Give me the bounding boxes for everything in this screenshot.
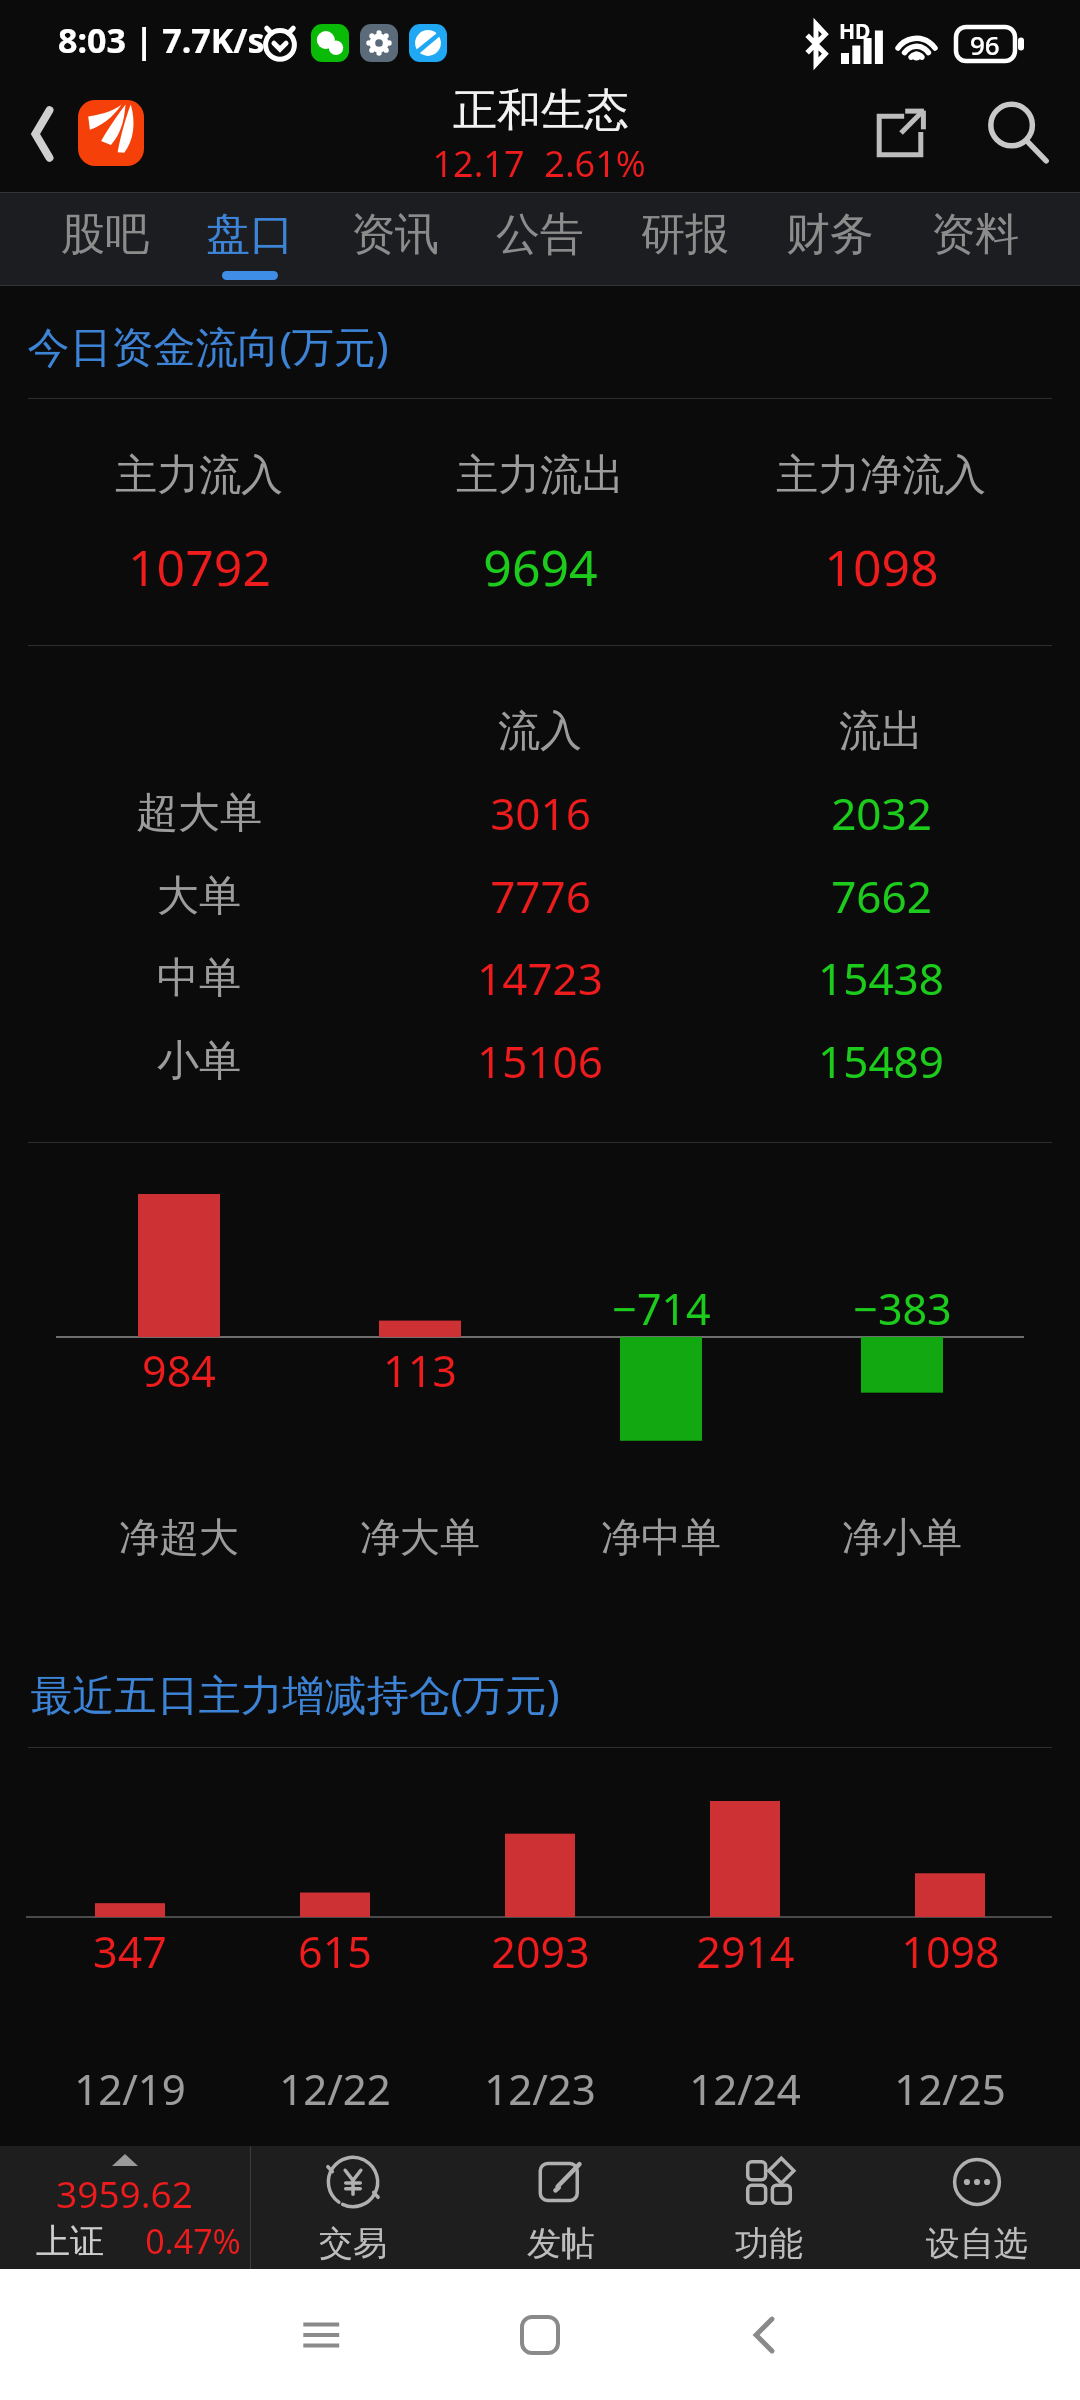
button[interactable]: 研报 xyxy=(612,192,757,286)
staticText: −383 xyxy=(853,1279,952,1338)
staticText: 主力流入 xyxy=(115,449,283,502)
staticText: 12/24 xyxy=(689,2060,801,2117)
button[interactable]: 资料 xyxy=(902,192,1047,286)
button[interactable] xyxy=(0,772,1080,854)
button[interactable]: 资讯 xyxy=(322,192,467,286)
button[interactable]: 公告 xyxy=(467,192,612,286)
staticText: 15106 xyxy=(477,1031,603,1091)
staticText: 0.47% xyxy=(145,2218,241,2264)
staticText: HD xyxy=(839,17,871,46)
staticText: 12/19 xyxy=(74,2060,186,2117)
button[interactable]: 财务 xyxy=(757,192,902,286)
staticText: 资料 xyxy=(931,207,1019,262)
staticText: 9694 xyxy=(483,533,598,601)
staticText: −714 xyxy=(612,1279,711,1338)
staticText: 最近五日主力增减持仓(万元) xyxy=(30,1665,560,1722)
staticText: 净中单 xyxy=(601,1512,721,1562)
staticText: 主力净流入 xyxy=(776,449,986,502)
staticText: 8:03 | 7.7K/s xyxy=(58,17,265,63)
staticText: 研报 xyxy=(641,207,729,262)
staticText: 3959.62 xyxy=(56,2168,193,2218)
staticText: 12/25 xyxy=(894,2060,1006,2117)
staticText: 2.61% xyxy=(544,139,646,188)
button[interactable] xyxy=(0,937,1080,1019)
staticText: 公告 xyxy=(496,207,584,262)
staticText: 96 xyxy=(970,27,1000,62)
staticText: 财务 xyxy=(786,207,874,262)
staticText: 15438 xyxy=(818,948,944,1008)
button[interactable] xyxy=(0,1020,1080,1102)
staticText: 资讯 xyxy=(351,207,439,262)
staticText: 12.17 xyxy=(432,139,525,188)
staticText: 中单 xyxy=(157,952,241,1005)
staticText: 正和生态 xyxy=(453,83,629,138)
button[interactable]: Back xyxy=(8,96,84,172)
button[interactable] xyxy=(0,300,1080,390)
button[interactable]: Back xyxy=(648,2269,864,2400)
button[interactable]: Recents xyxy=(216,2269,432,2400)
button[interactable]: 发帖 xyxy=(458,2146,664,2269)
button[interactable]: 设自选 xyxy=(874,2146,1080,2269)
staticText: 7776 xyxy=(490,866,591,926)
staticText: 大单 xyxy=(157,870,241,923)
staticText: 今日资金流向(万元) xyxy=(27,317,389,374)
staticText: 净大单 xyxy=(360,1512,480,1562)
staticText: 347 xyxy=(93,1922,167,1981)
staticText: 2914 xyxy=(696,1922,795,1981)
staticText: 14723 xyxy=(477,948,603,1008)
staticText: 113 xyxy=(383,1341,457,1400)
staticText: 1098 xyxy=(824,533,939,601)
button[interactable]: Share xyxy=(860,94,940,174)
staticText: 流入 xyxy=(498,705,582,758)
staticText: 主力流出 xyxy=(456,449,624,502)
button[interactable]: Eastmoney xyxy=(78,100,144,166)
staticText: 盘口 xyxy=(206,207,294,262)
button[interactable]: 盘口 xyxy=(177,192,322,286)
staticText: 2093 xyxy=(491,1922,590,1981)
staticText: 小单 xyxy=(157,1035,241,1088)
button[interactable]: Search xyxy=(978,94,1058,174)
button[interactable]: Home xyxy=(432,2269,648,2400)
staticText: 7662 xyxy=(831,866,932,926)
button[interactable] xyxy=(28,412,369,622)
staticText: 615 xyxy=(298,1922,372,1981)
button[interactable] xyxy=(0,855,1080,937)
button[interactable]: 功能 xyxy=(666,2146,872,2269)
button[interactable] xyxy=(710,412,1051,622)
staticText: 15489 xyxy=(818,1031,944,1091)
button[interactable]: 3959.62 xyxy=(0,2146,250,2269)
button[interactable]: 股吧 xyxy=(33,192,177,286)
staticText: 发帖 xyxy=(527,2222,595,2265)
staticText: 12/23 xyxy=(484,2060,596,2117)
staticText: 超大单 xyxy=(136,787,262,840)
button[interactable] xyxy=(0,1650,1080,1738)
staticText: 12/22 xyxy=(279,2060,391,2117)
staticText: 净超大 xyxy=(119,1512,239,1562)
staticText: 上证 xyxy=(36,2220,104,2263)
staticText: 2032 xyxy=(831,783,932,843)
staticText: 984 xyxy=(142,1341,216,1400)
staticText: 流出 xyxy=(839,705,923,758)
staticText: 1098 xyxy=(901,1922,1000,1981)
staticText: 3016 xyxy=(490,783,591,843)
staticText: 设自选 xyxy=(926,2222,1028,2265)
staticText: 交易 xyxy=(319,2222,387,2265)
button[interactable] xyxy=(369,412,710,622)
button[interactable]: 交易 xyxy=(250,2146,456,2269)
staticText: 10792 xyxy=(128,533,271,601)
staticText: 净小单 xyxy=(842,1512,962,1562)
staticText: 功能 xyxy=(735,2222,803,2265)
staticText: 股吧 xyxy=(61,207,149,262)
